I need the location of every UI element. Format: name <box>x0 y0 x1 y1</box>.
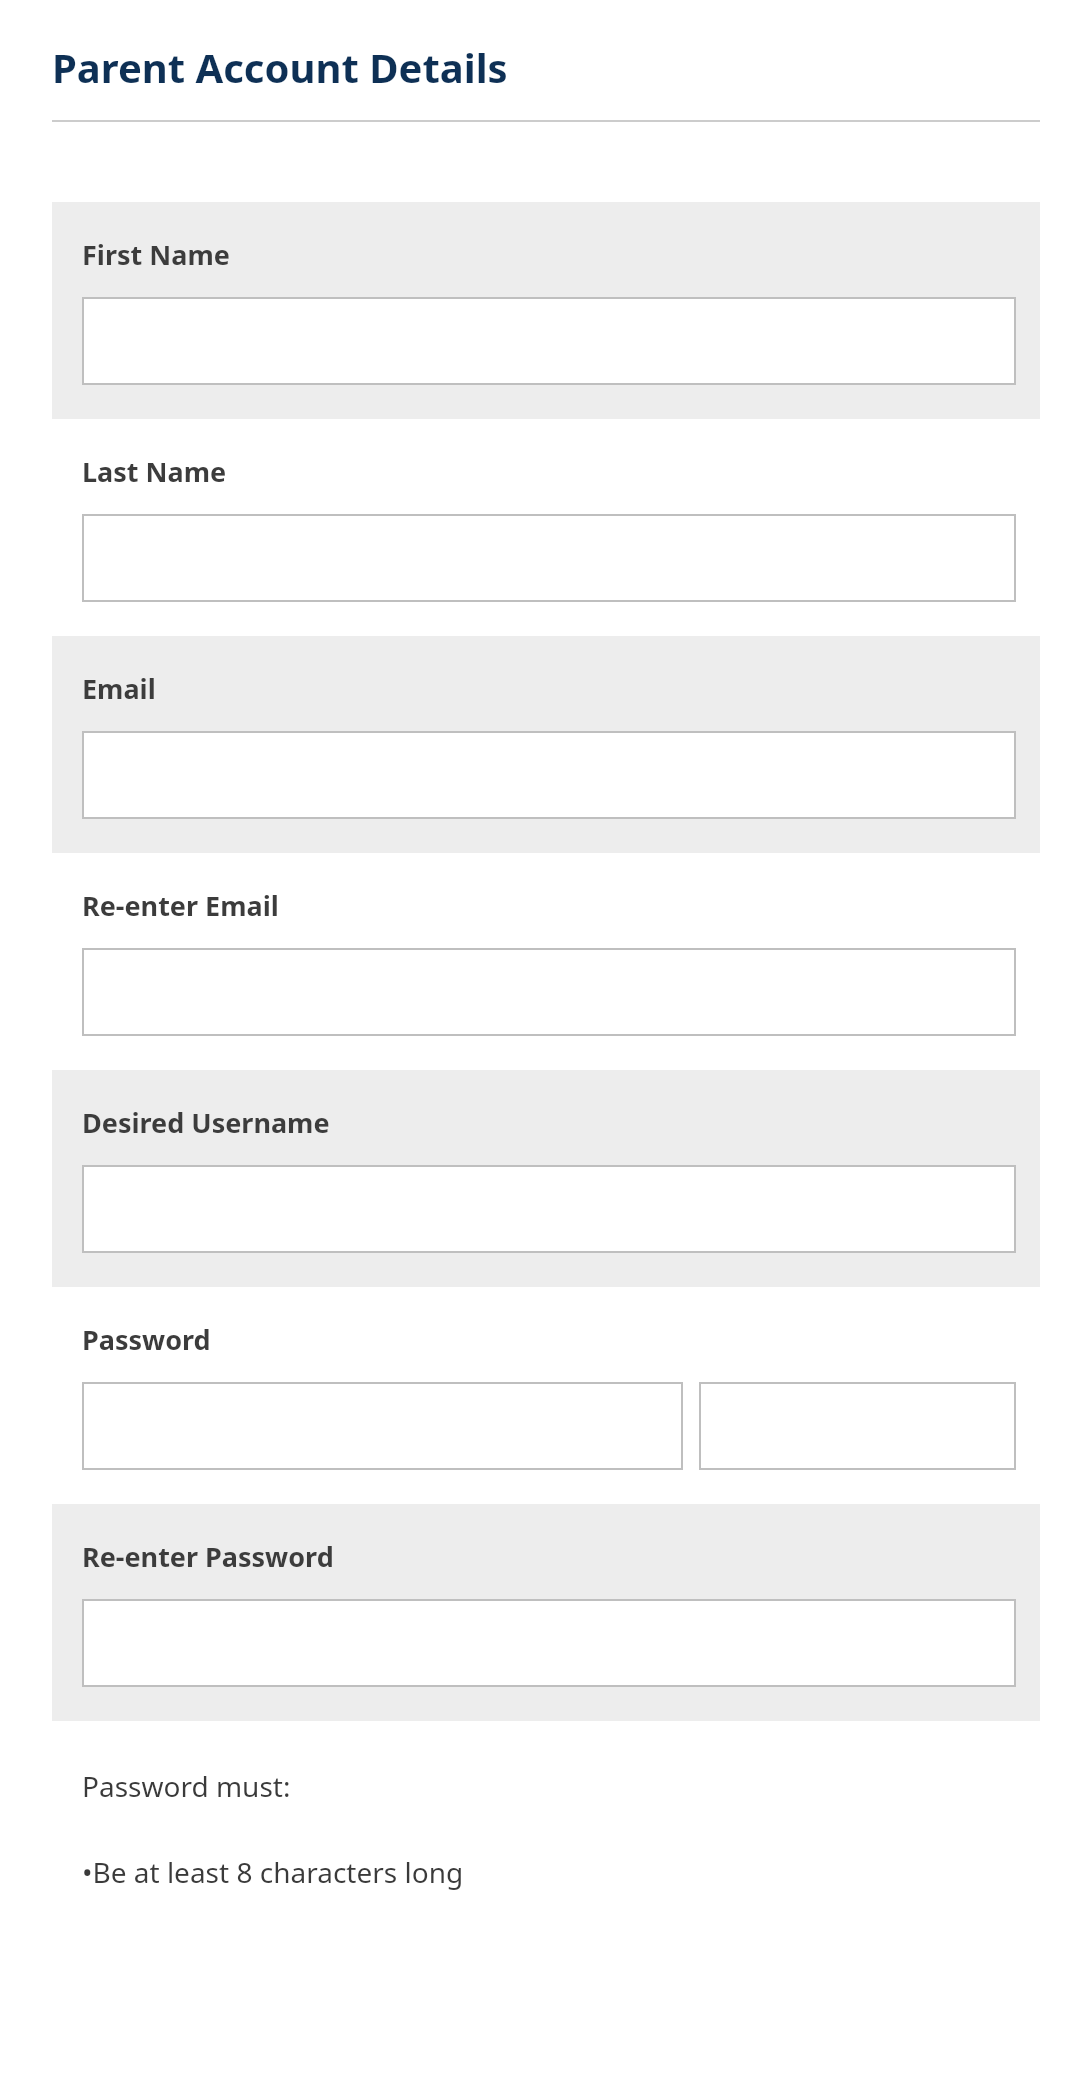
staticText: Re-enter Password <box>82 1538 334 1575</box>
button[interactable]: Re-enter Email field <box>82 948 1016 1036</box>
button[interactable]: Email field <box>82 731 1016 819</box>
button[interactable]: Desired Username field <box>82 1165 1016 1253</box>
staticText: Re-enter Email <box>82 887 279 924</box>
staticText: Last Name <box>82 453 227 490</box>
staticText: Password <box>82 1321 211 1358</box>
staticText: •Be at least 8 characters long <box>82 1853 464 1891</box>
staticText: Desired Username <box>82 1104 330 1141</box>
button[interactable]: First Name field <box>82 297 1016 385</box>
button[interactable]: Last Name field <box>82 514 1016 602</box>
button[interactable]: Password strength <box>699 1382 1016 1470</box>
staticText: Email <box>82 670 156 707</box>
staticText: Parent Account Details <box>52 40 508 94</box>
button[interactable]: Re-enter Password field <box>82 1599 1016 1687</box>
button[interactable]: Password field <box>82 1382 683 1470</box>
staticText: Password must: <box>82 1767 291 1805</box>
staticText: First Name <box>82 236 230 273</box>
